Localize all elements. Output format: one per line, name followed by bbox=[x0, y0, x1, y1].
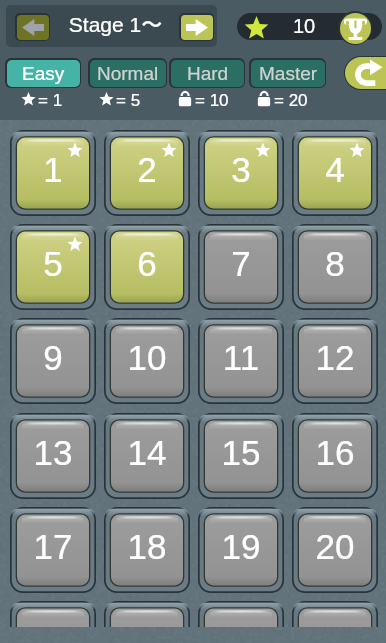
button[interactable]: Achievements bbox=[338, 11, 372, 45]
button[interactable]: 8 bbox=[292, 224, 378, 310]
button[interactable]: Normal bbox=[88, 58, 167, 88]
staticText: = 10 bbox=[195, 91, 229, 110]
button[interactable]: 16 bbox=[292, 413, 378, 499]
button[interactable]: 24 bbox=[292, 601, 378, 627]
button[interactable]: Previous stage bbox=[15, 13, 50, 41]
button[interactable]: 12 bbox=[292, 318, 378, 404]
button[interactable]: Next stage bbox=[179, 13, 214, 41]
staticText: 1 bbox=[18, 150, 88, 189]
button[interactable]: 4 bbox=[292, 130, 378, 216]
staticText: Normal bbox=[97, 63, 159, 84]
button[interactable]: 15 bbox=[198, 413, 284, 499]
button[interactable]: 11 bbox=[198, 318, 284, 404]
staticText: 6 bbox=[112, 244, 182, 283]
button[interactable]: 20 bbox=[292, 507, 378, 593]
staticText: 10 bbox=[112, 338, 182, 377]
button[interactable]: 22 bbox=[104, 601, 190, 627]
staticText: 7 bbox=[206, 244, 276, 283]
staticText: 2 bbox=[112, 150, 182, 189]
staticText: 12 bbox=[300, 338, 370, 377]
button[interactable]: 10 bbox=[104, 318, 190, 404]
button[interactable]: 21 bbox=[10, 601, 96, 627]
staticText: 4 bbox=[300, 150, 370, 189]
staticText: Hard bbox=[187, 63, 229, 84]
staticText: Easy bbox=[22, 63, 65, 84]
button[interactable]: 17 bbox=[10, 507, 96, 593]
staticText: 10 bbox=[274, 15, 334, 37]
staticText: = 5 bbox=[116, 91, 141, 110]
staticText: Master bbox=[259, 63, 318, 84]
staticText: = 1 bbox=[38, 91, 63, 110]
staticText: 11 bbox=[206, 338, 276, 377]
button[interactable]: Master bbox=[249, 58, 326, 88]
staticText: Stage 1〜 bbox=[57, 12, 174, 38]
button[interactable] bbox=[237, 13, 382, 40]
button[interactable]: 23 bbox=[198, 601, 284, 627]
button[interactable]: 19 bbox=[198, 507, 284, 593]
staticText: 16 bbox=[300, 433, 370, 472]
button[interactable]: 6 bbox=[104, 224, 190, 310]
staticText: 20 bbox=[300, 527, 370, 566]
staticText: 14 bbox=[112, 433, 182, 472]
button[interactable]: Easy bbox=[5, 58, 81, 88]
staticText: 17 bbox=[18, 527, 88, 566]
staticText: 8 bbox=[300, 244, 370, 283]
staticText: 18 bbox=[112, 527, 182, 566]
staticText: 19 bbox=[206, 527, 276, 566]
button[interactable]: 3 bbox=[198, 130, 284, 216]
button[interactable]: Refresh bbox=[344, 56, 386, 90]
button[interactable]: Hard bbox=[169, 58, 245, 88]
button[interactable]: 5 bbox=[10, 224, 96, 310]
staticText: 5 bbox=[18, 244, 88, 283]
staticText: 15 bbox=[206, 433, 276, 472]
staticText: 13 bbox=[18, 433, 88, 472]
button[interactable]: 2 bbox=[104, 130, 190, 216]
button[interactable]: 7 bbox=[198, 224, 284, 310]
button[interactable]: 18 bbox=[104, 507, 190, 593]
button[interactable]: 9 bbox=[10, 318, 96, 404]
button[interactable]: 14 bbox=[104, 413, 190, 499]
button[interactable]: 13 bbox=[10, 413, 96, 499]
staticText: 9 bbox=[18, 338, 88, 377]
staticText: 3 bbox=[206, 150, 276, 189]
staticText: = 20 bbox=[274, 91, 308, 110]
button[interactable]: 1 bbox=[10, 130, 96, 216]
